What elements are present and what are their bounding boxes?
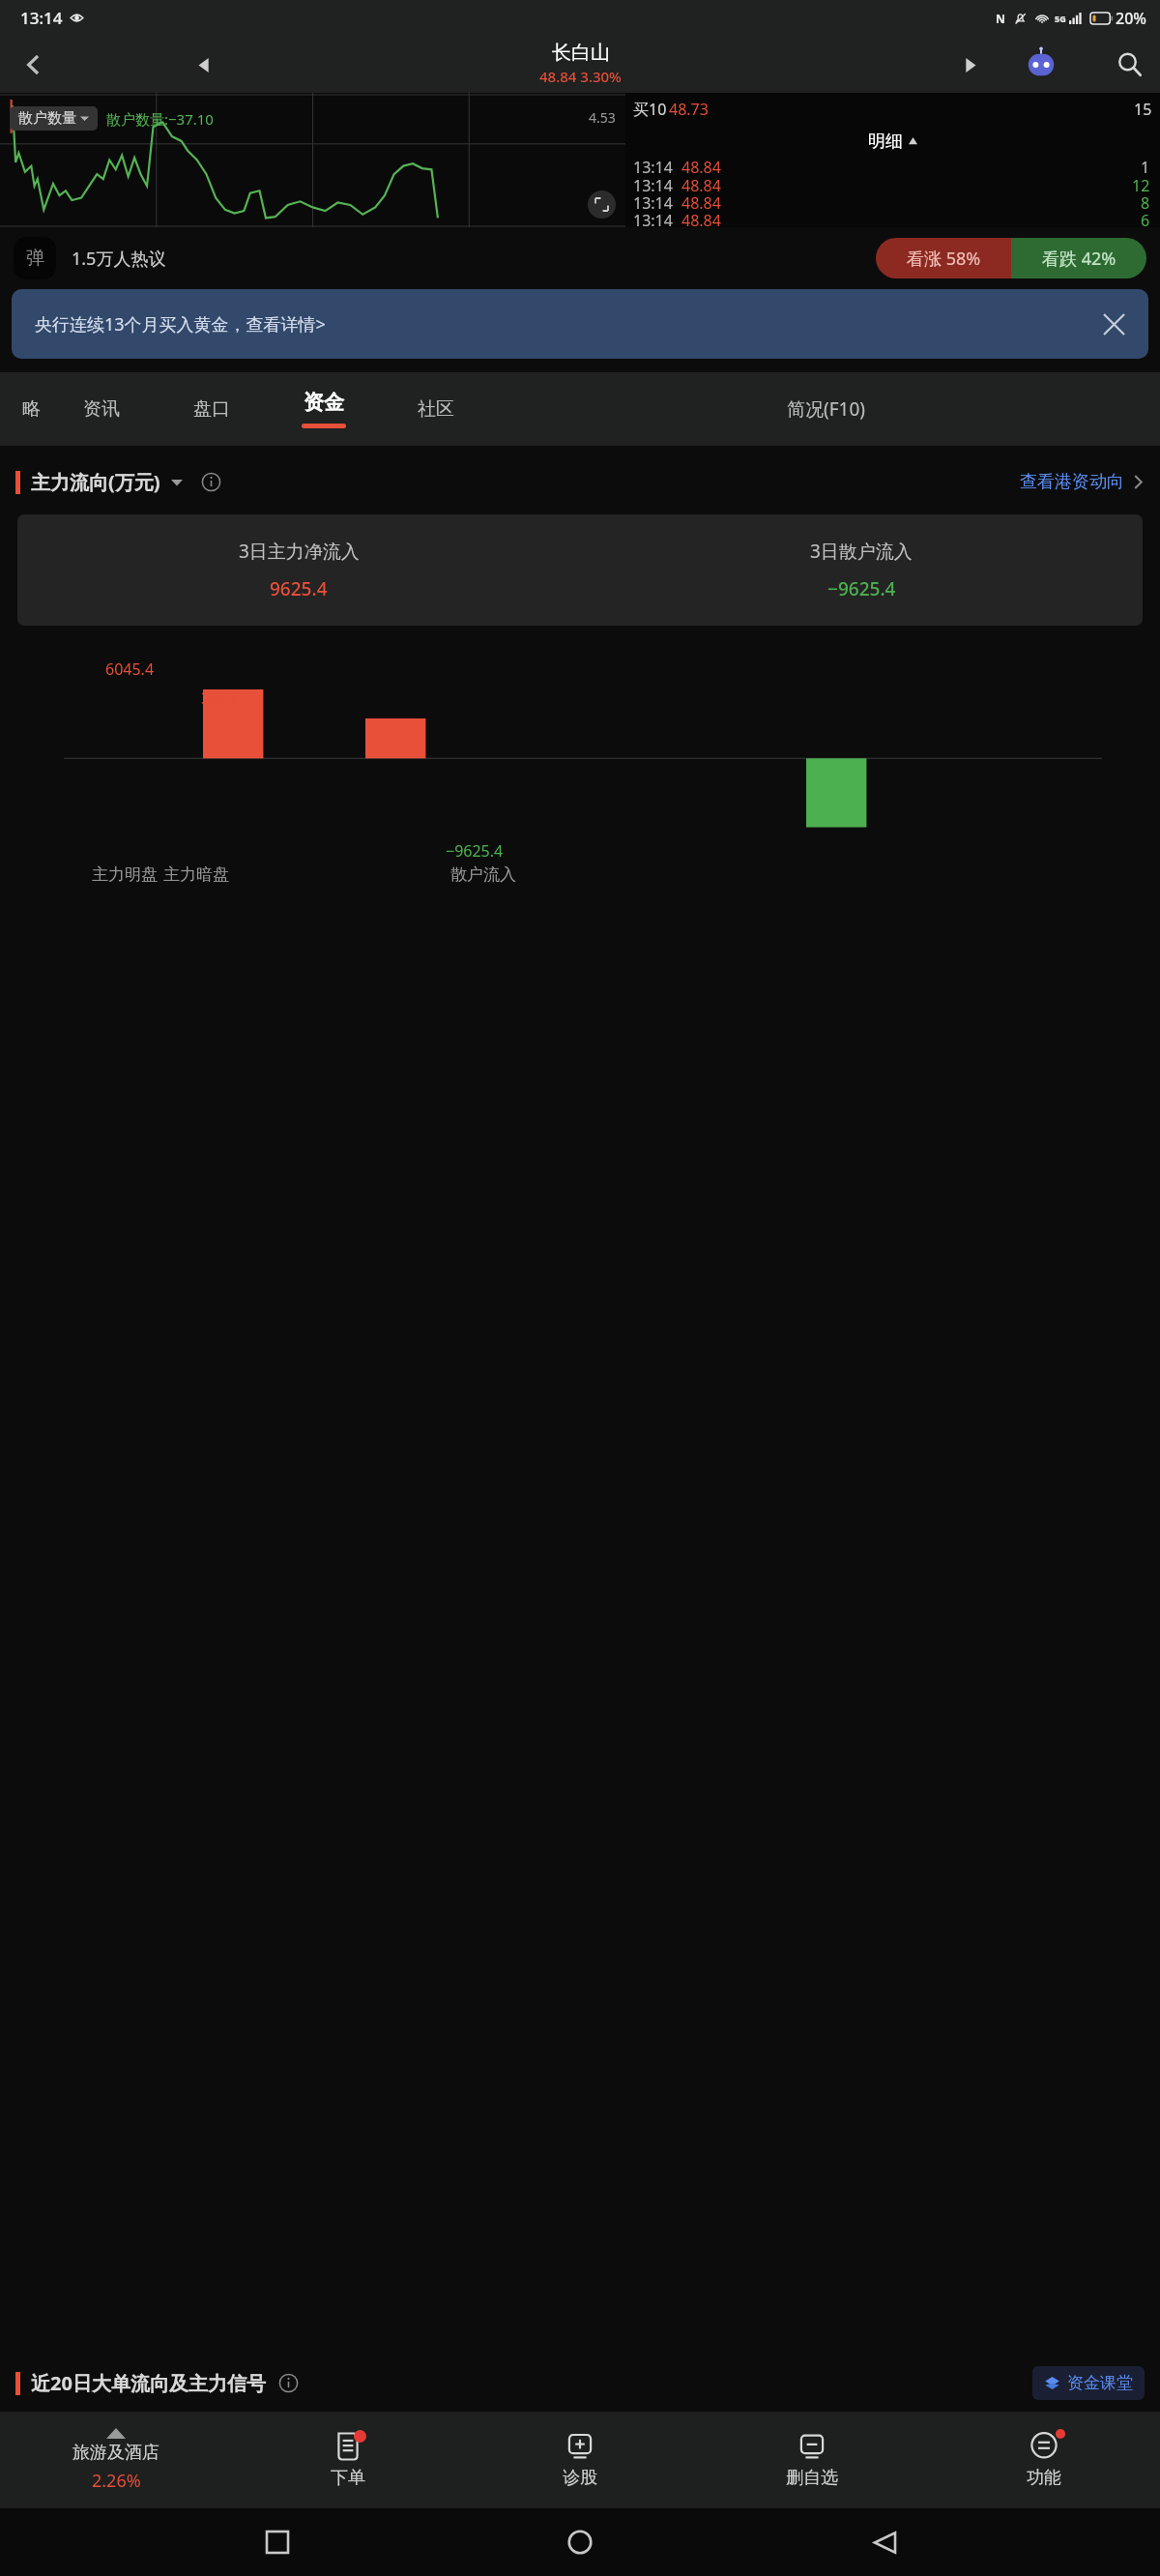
button[interactable]: 诊股: [464, 2412, 696, 2508]
staticText: 48.84 3.30%: [539, 67, 622, 86]
button[interactable]: 13:14: [633, 157, 1150, 175]
staticText: 48.84: [681, 192, 721, 210]
button[interactable]: Fullscreen: [588, 190, 616, 219]
staticText: 弹: [26, 247, 44, 270]
staticText: 8: [1141, 192, 1150, 210]
button[interactable]: 略: [0, 372, 46, 446]
staticText: −9625.4: [827, 576, 896, 601]
button[interactable]: Recents: [251, 2516, 304, 2568]
staticText: 主力暗盘: [163, 864, 229, 885]
staticText: 3日主力净流入: [239, 539, 360, 564]
staticText: 诊股: [563, 2467, 597, 2489]
staticText: 3579.9: [201, 688, 250, 709]
staticText: 散户流入: [450, 864, 516, 885]
button[interactable]: Previous: [184, 44, 224, 85]
button[interactable]: Next: [949, 44, 990, 85]
button[interactable]: 主力流向(万元): [15, 469, 1145, 495]
button[interactable]: Home: [554, 2516, 606, 2568]
button[interactable]: Close: [1092, 303, 1135, 345]
staticText: 近20日大单流向及主力信号: [31, 2370, 266, 2396]
button[interactable]: 盘口: [157, 372, 267, 446]
staticText: 5G: [1055, 13, 1066, 24]
button[interactable]: 删自选: [696, 2412, 928, 2508]
button[interactable]: 3日散户流入: [580, 514, 1143, 626]
button[interactable]: 13:14: [633, 210, 1150, 227]
staticText: 13:14: [633, 192, 673, 210]
staticText: 社区: [418, 397, 454, 421]
staticText: 48.84: [681, 175, 721, 192]
staticText: 看跌 42%: [1042, 247, 1116, 271]
button[interactable]: 查看港资动向: [1020, 471, 1145, 493]
staticText: 资金课堂: [1067, 2373, 1133, 2393]
button[interactable]: 13:14: [633, 192, 1150, 210]
staticText: 功能: [1027, 2467, 1061, 2489]
staticText: 12: [1132, 175, 1150, 192]
staticText: 主力明盘: [92, 864, 158, 885]
staticText: 15: [1134, 99, 1152, 120]
staticText: 2.26%: [92, 2469, 141, 2493]
staticText: 删自选: [786, 2467, 838, 2489]
staticText: 6045.4: [105, 659, 155, 680]
staticText: 4.53: [589, 108, 616, 127]
staticText: 长白山: [552, 41, 610, 65]
staticText: 资讯: [83, 397, 120, 421]
staticText: 资金: [304, 390, 344, 415]
button[interactable]: 资金课堂: [1044, 2373, 1133, 2393]
button[interactable]: 散户数量: [18, 109, 89, 128]
staticText: 央行连续13个月买入黄金，查看详情>: [35, 312, 326, 337]
staticText: 13:14: [20, 7, 63, 29]
button[interactable]: Back: [857, 2516, 910, 2568]
button[interactable]: Back: [0, 36, 66, 93]
staticText: 13:14: [633, 210, 673, 227]
button[interactable]: 资讯: [46, 372, 157, 446]
staticText: 看涨 58%: [907, 247, 981, 271]
staticText: −9625.4: [446, 840, 504, 862]
button[interactable]: 简况(F10): [491, 372, 1160, 446]
button[interactable]: 旅游及酒店: [0, 2412, 232, 2508]
button[interactable]: 看跌 42%: [1011, 238, 1146, 278]
staticText: N: [996, 11, 1005, 26]
button[interactable]: 资金: [267, 372, 381, 446]
staticText: 主力流向(万元): [31, 469, 160, 495]
staticText: 散户数量: [18, 109, 76, 128]
button[interactable]: Search: [1098, 36, 1160, 93]
staticText: 散户数量:−37.10: [106, 109, 214, 129]
button[interactable]: 社区: [381, 372, 491, 446]
button[interactable]: 看涨 58%: [876, 238, 1011, 278]
staticText: 买10: [633, 99, 667, 120]
staticText: 13:14: [633, 157, 673, 175]
button[interactable]: 3日主力净流入: [17, 514, 580, 626]
button[interactable]: AI Assistant: [1017, 41, 1065, 89]
staticText: 1.5万人热议: [72, 247, 166, 271]
staticText: 下单: [331, 2467, 365, 2489]
staticText: 48.84: [681, 157, 721, 175]
staticText: 13:14: [633, 175, 673, 192]
button[interactable]: 13:14: [633, 175, 1150, 192]
staticText: 旅游及酒店: [72, 2442, 159, 2464]
staticText: 48.73: [669, 99, 709, 120]
button[interactable]: 功能: [928, 2412, 1160, 2508]
button[interactable]: 下单: [232, 2412, 464, 2508]
staticText: 48.84: [681, 210, 721, 227]
button[interactable]: Comments: [14, 237, 56, 279]
staticText: 查看港资动向: [1020, 471, 1124, 493]
staticText: 20%: [1116, 8, 1146, 29]
button[interactable]: 央行连续13个月买入黄金，查看详情>: [12, 289, 1148, 359]
staticText: 明细: [868, 131, 903, 153]
staticText: 盘口: [193, 397, 230, 421]
staticText: 略: [22, 397, 41, 421]
staticText: 简况(F10): [787, 396, 865, 422]
staticText: 1: [1141, 157, 1150, 175]
staticText: 9625.4: [270, 576, 328, 601]
staticText: 6: [1141, 210, 1150, 227]
staticText: 3日散户流入: [810, 539, 913, 564]
